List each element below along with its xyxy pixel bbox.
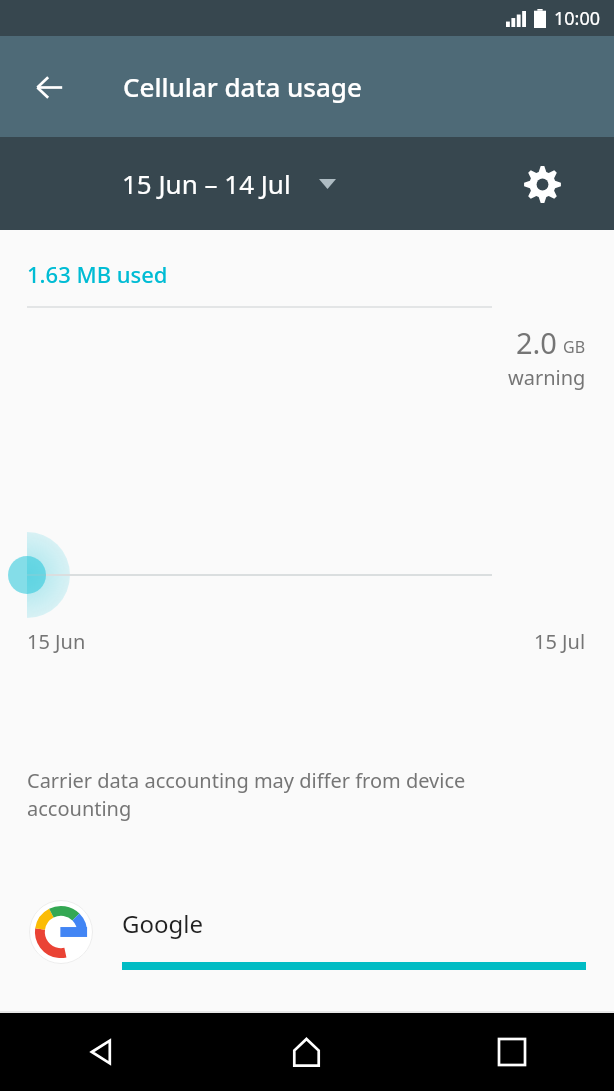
staticText: warning [508,364,586,391]
button[interactable]: Recent apps [409,1013,614,1091]
button[interactable]: Home [204,1013,409,1091]
staticText: Cellular data usage [123,69,362,104]
button[interactable]: Back [22,60,76,114]
button[interactable]: Google [0,890,614,998]
staticText: Google [122,907,203,940]
staticText: Carrier data accounting may differ from … [27,767,552,822]
button[interactable]: Settings [518,160,566,208]
staticText: GB [563,336,586,358]
staticText: 15 Jul [534,628,586,655]
staticText: 15 Jun [27,628,86,655]
button[interactable]: Back [0,1013,204,1091]
staticText: 10:00 [554,6,601,31]
staticText: 15 Jun – 14 Jul [122,166,291,201]
staticText: 2.0 [516,323,557,362]
button[interactable]: 15 Jun – 14 Jul [112,156,346,211]
staticText: 1.63 MB used [27,259,168,289]
